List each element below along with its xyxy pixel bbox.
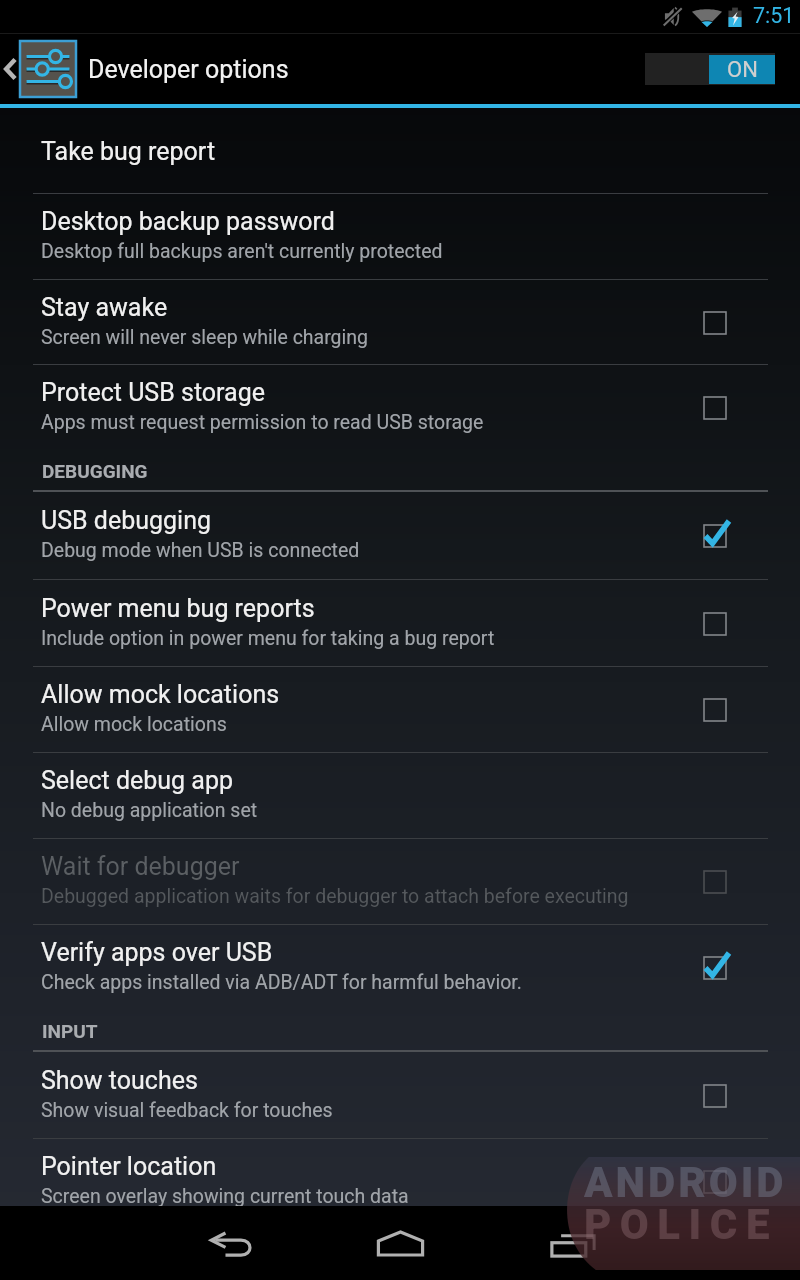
staticText: Desktop backup password xyxy=(41,207,335,236)
staticText: ANDROID xyxy=(584,1158,787,1207)
button[interactable]: Protect USB storage xyxy=(0,365,800,451)
button[interactable]: Select debug app xyxy=(0,753,800,839)
staticText: Screen will never sleep while charging xyxy=(41,326,369,349)
staticText: Allow mock locations xyxy=(41,713,227,736)
staticText: Show touches xyxy=(41,1066,198,1095)
button[interactable]: Take bug report xyxy=(0,108,800,194)
button[interactable]: Power menu bug reports xyxy=(0,580,800,667)
button[interactable]: Navigate up xyxy=(0,34,307,104)
staticText: Show visual feedback for touches xyxy=(41,1099,333,1122)
button[interactable]: Desktop backup password xyxy=(0,194,800,280)
staticText: Protect USB storage xyxy=(41,378,265,407)
staticText: Power menu bug reports xyxy=(41,594,315,623)
staticText: POLICE xyxy=(584,1200,778,1249)
button[interactable]: Recent apps xyxy=(520,1206,626,1280)
staticText: Select debug app xyxy=(41,766,233,795)
staticText: Pointer location xyxy=(41,1152,217,1181)
staticText: ON xyxy=(727,57,758,83)
staticText: Take bug report xyxy=(41,137,216,166)
button[interactable]: Stay awake xyxy=(0,280,800,365)
staticText: Debug mode when USB is connected xyxy=(41,539,360,562)
staticText: Include option in power menu for taking … xyxy=(41,627,495,650)
staticText: USB debugging xyxy=(41,506,212,535)
button[interactable]: Home xyxy=(347,1206,453,1280)
staticText: DEBUGGING xyxy=(42,460,148,482)
button[interactable]: Developer options toggle, on xyxy=(645,53,775,85)
staticText: Screen overlay showing current touch dat… xyxy=(41,1185,409,1208)
staticText: Check apps installed via ADB/ADT for har… xyxy=(41,971,522,994)
staticText: 7:51 xyxy=(753,3,795,28)
button[interactable]: Verify apps over USB xyxy=(0,925,800,1011)
button[interactable]: USB debugging xyxy=(0,492,800,580)
button[interactable]: Pointer location xyxy=(0,1139,800,1225)
staticText: Desktop full backups aren't currently pr… xyxy=(41,240,443,263)
staticText: Stay awake xyxy=(41,293,168,322)
staticText: INPUT xyxy=(42,1020,98,1042)
staticText: Wait for debugger xyxy=(41,852,240,881)
staticText: Allow mock locations xyxy=(41,680,280,709)
staticText: Apps must request permission to read USB… xyxy=(41,411,484,434)
staticText: Debugged application waits for debugger … xyxy=(41,885,629,908)
button[interactable]: Allow mock locations xyxy=(0,667,800,753)
staticText: Developer options xyxy=(88,55,289,84)
button[interactable]: Wait for debugger xyxy=(0,839,800,925)
staticText: No debug application set xyxy=(41,799,258,822)
staticText: Verify apps over USB xyxy=(41,938,273,967)
button[interactable]: Back xyxy=(178,1206,284,1280)
button[interactable]: Show touches xyxy=(0,1052,800,1139)
